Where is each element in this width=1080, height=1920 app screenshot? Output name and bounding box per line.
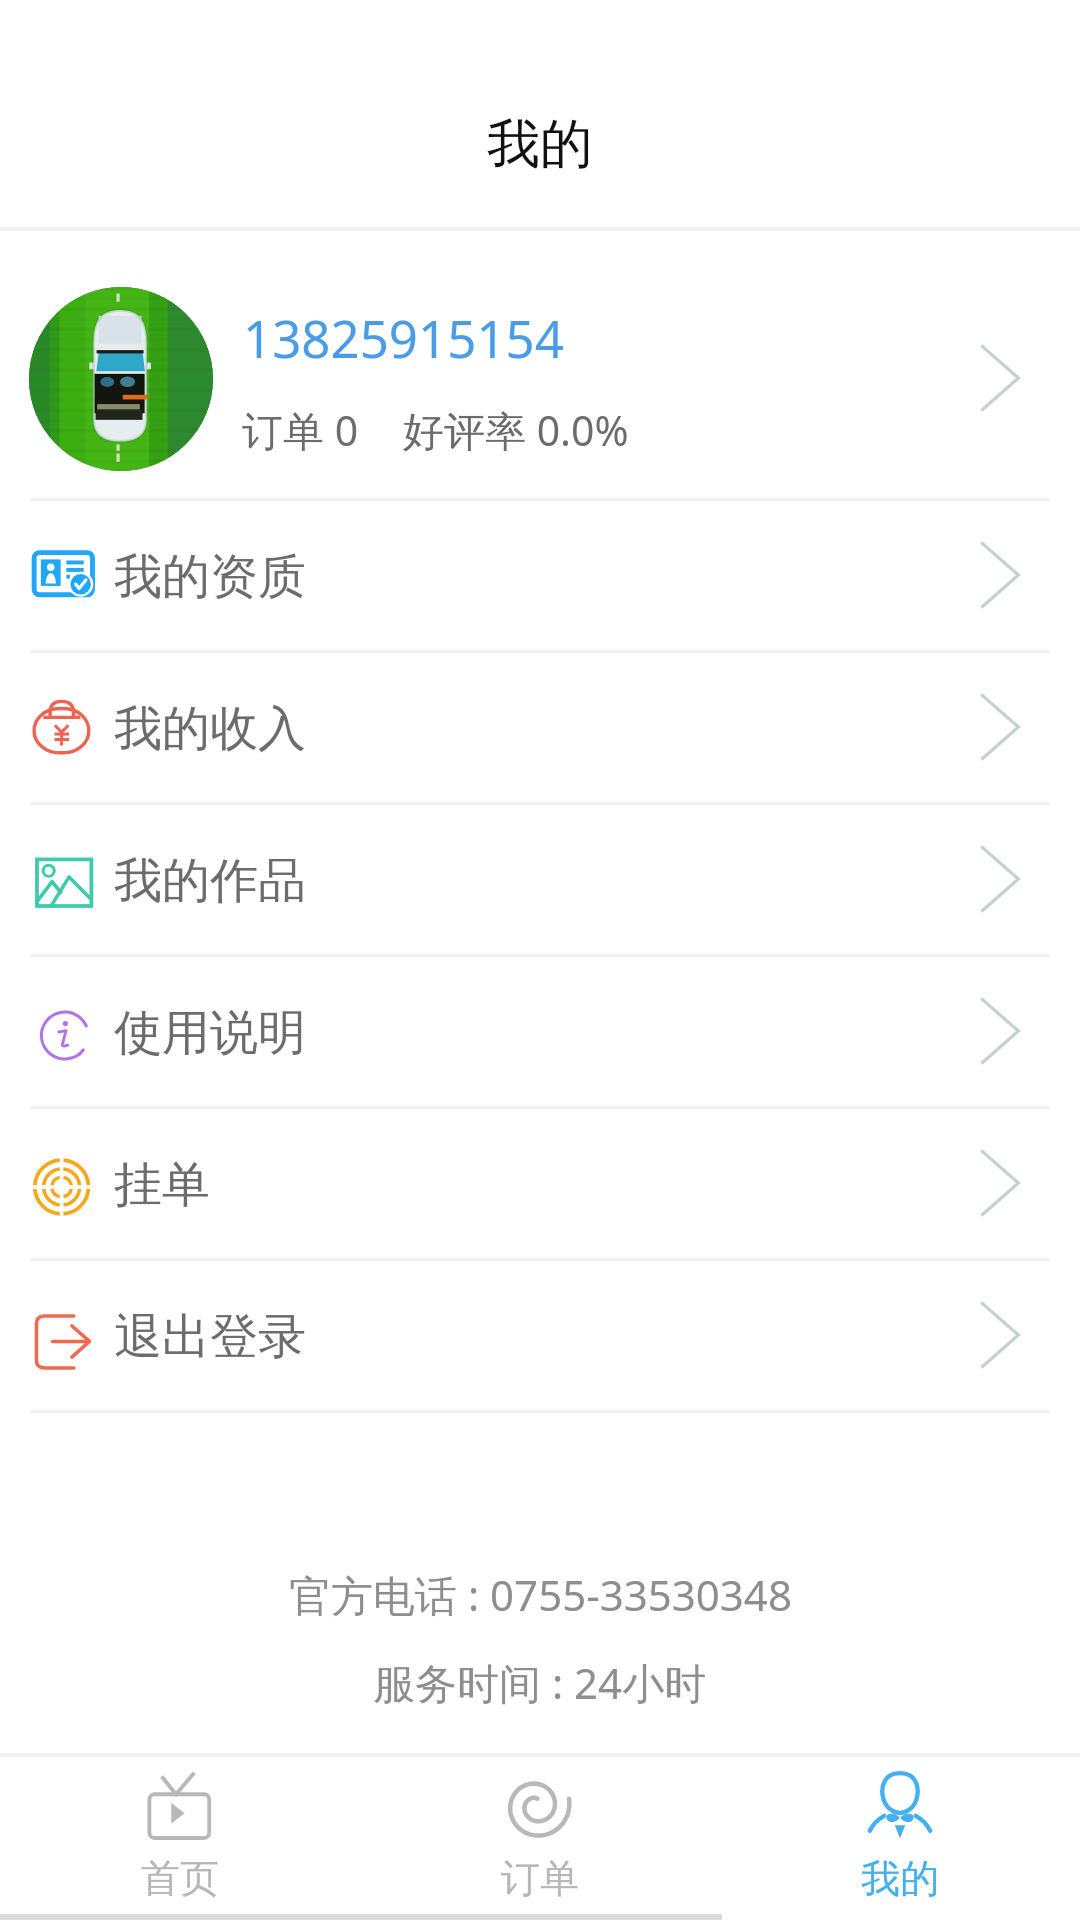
staticText: 我的 bbox=[487, 111, 593, 178]
button[interactable]: 首页 bbox=[0, 1757, 360, 1920]
staticText: 订单 bbox=[501, 1854, 579, 1903]
staticText: 使用说明 bbox=[114, 1003, 306, 1063]
other: Open bbox=[981, 345, 1020, 411]
staticText: 服务时间 : 24小时 bbox=[373, 1654, 707, 1711]
button[interactable]: 13825915154 bbox=[0, 231, 1080, 498]
other: Open bbox=[981, 694, 1020, 760]
button[interactable]: 我的收入 bbox=[0, 653, 1080, 802]
button[interactable]: 订单 bbox=[360, 1757, 720, 1920]
other: Open bbox=[981, 1150, 1020, 1216]
staticText: 挂单 bbox=[114, 1155, 210, 1215]
other: Open bbox=[981, 998, 1020, 1064]
other: Open bbox=[981, 1302, 1020, 1368]
staticText: 我的作品 bbox=[114, 851, 306, 911]
staticText: 13825915154 bbox=[243, 303, 564, 372]
button[interactable]: 退出登录 bbox=[0, 1261, 1080, 1410]
other: Open bbox=[981, 846, 1020, 912]
button[interactable]: 我的作品 bbox=[0, 805, 1080, 954]
staticText: 退出登录 bbox=[114, 1307, 306, 1367]
button[interactable]: 挂单 bbox=[0, 1109, 1080, 1258]
other: Open bbox=[981, 542, 1020, 608]
button[interactable]: 我的资质 bbox=[0, 501, 1080, 650]
button[interactable]: 使用说明 bbox=[0, 957, 1080, 1106]
staticText: 订单 0 bbox=[242, 402, 359, 458]
staticText: 我的资质 bbox=[114, 547, 306, 607]
staticText: 好评率 0.0% bbox=[403, 402, 629, 458]
staticText: 官方电话 : 0755-33530348 bbox=[289, 1566, 792, 1623]
button[interactable]: 我的 bbox=[720, 1757, 1080, 1920]
staticText: 我的收入 bbox=[114, 699, 306, 759]
staticText: 首页 bbox=[141, 1854, 219, 1903]
staticText: 我的 bbox=[861, 1854, 939, 1903]
